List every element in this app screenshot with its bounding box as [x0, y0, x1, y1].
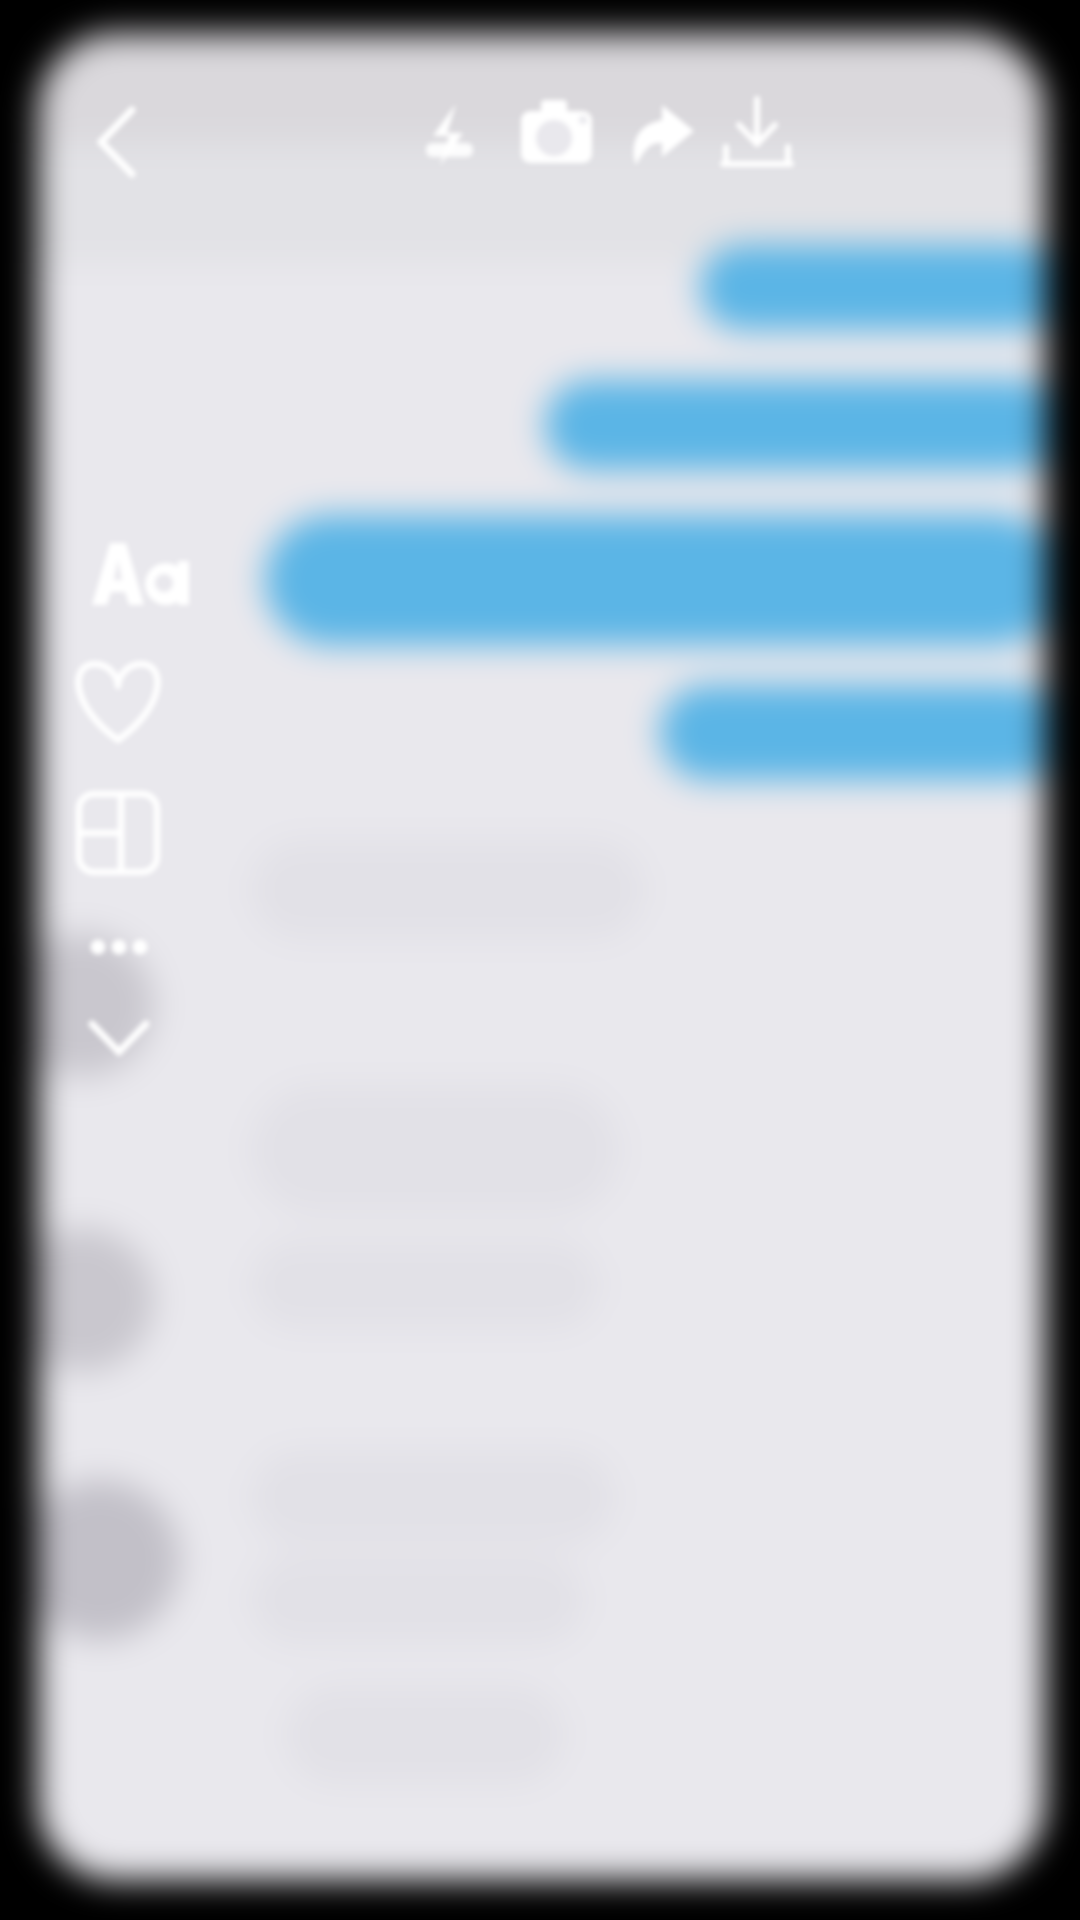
button[interactable]: More options [76, 908, 164, 988]
button[interactable]: Layout [68, 782, 168, 884]
button[interactable]: Share [614, 90, 706, 178]
button[interactable]: Download [710, 86, 804, 178]
button[interactable]: Flash auto [408, 88, 500, 184]
button[interactable]: Camera [508, 90, 604, 178]
button[interactable]: Add text [78, 536, 196, 620]
button[interactable]: Back [96, 96, 172, 184]
button[interactable]: Collapse toolbar [72, 996, 168, 1078]
button[interactable]: Draw heart [68, 652, 168, 752]
